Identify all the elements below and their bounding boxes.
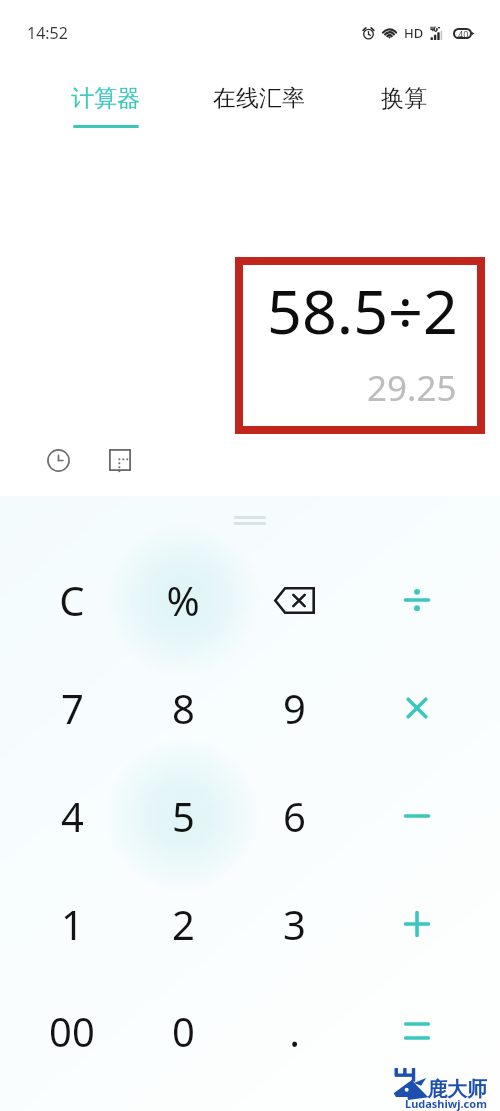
staticText: 29.25 (367, 364, 457, 412)
button[interactable]: Scientific keypad (102, 442, 138, 478)
staticText: 8 (172, 681, 195, 735)
staticText: Ludashiwj.com (405, 1096, 487, 1111)
button[interactable] (362, 979, 472, 1083)
staticText: 在线汇率 (213, 84, 305, 113)
staticText: 58.5÷2 (267, 269, 458, 352)
button[interactable] (362, 656, 472, 760)
staticText: 6 (283, 789, 306, 843)
button[interactable]: % (128, 548, 238, 652)
button[interactable]: C (17, 548, 127, 652)
staticText: C (59, 573, 85, 627)
staticText: 2 (172, 897, 195, 951)
staticText: 鹿大师 (427, 1077, 487, 1102)
button[interactable]: 2 (128, 872, 238, 976)
button[interactable]: 6 (239, 764, 349, 868)
button[interactable]: 在线汇率 (199, 56, 319, 131)
button[interactable]: 3 (239, 872, 349, 976)
staticText: 40 (458, 28, 469, 39)
button[interactable] (362, 872, 472, 976)
staticText: 0 (172, 1004, 195, 1058)
staticText: 5 (172, 789, 195, 843)
button[interactable]: 1 (17, 872, 127, 976)
button[interactable]: 0 (128, 979, 238, 1083)
button[interactable]: 8 (128, 656, 238, 760)
staticText: 4 (61, 789, 84, 843)
staticText: 换算 (381, 84, 427, 113)
staticText: 00 (49, 1004, 95, 1058)
button[interactable] (362, 764, 472, 868)
button[interactable]: Backspace (239, 548, 349, 652)
button[interactable]: 7 (17, 656, 127, 760)
staticText: 3 (283, 897, 306, 951)
staticText: 9 (283, 681, 306, 735)
staticText: 7 (61, 681, 84, 735)
button[interactable]: History (40, 442, 76, 478)
staticText: HD (404, 24, 424, 42)
button[interactable] (362, 548, 472, 652)
staticText: 14:52 (27, 22, 68, 44)
staticText: 计算器 (71, 84, 140, 113)
button[interactable]: 4 (17, 764, 127, 868)
button[interactable]: 5 (128, 764, 238, 868)
staticText: 1 (61, 897, 84, 951)
button[interactable]: . (239, 979, 349, 1083)
staticText: . (289, 1004, 300, 1058)
staticText: % (166, 573, 200, 627)
button[interactable]: 00 (17, 979, 127, 1083)
button[interactable]: 9 (239, 656, 349, 760)
button[interactable]: 计算器 (45, 56, 165, 131)
button[interactable]: 换算 (344, 56, 464, 131)
